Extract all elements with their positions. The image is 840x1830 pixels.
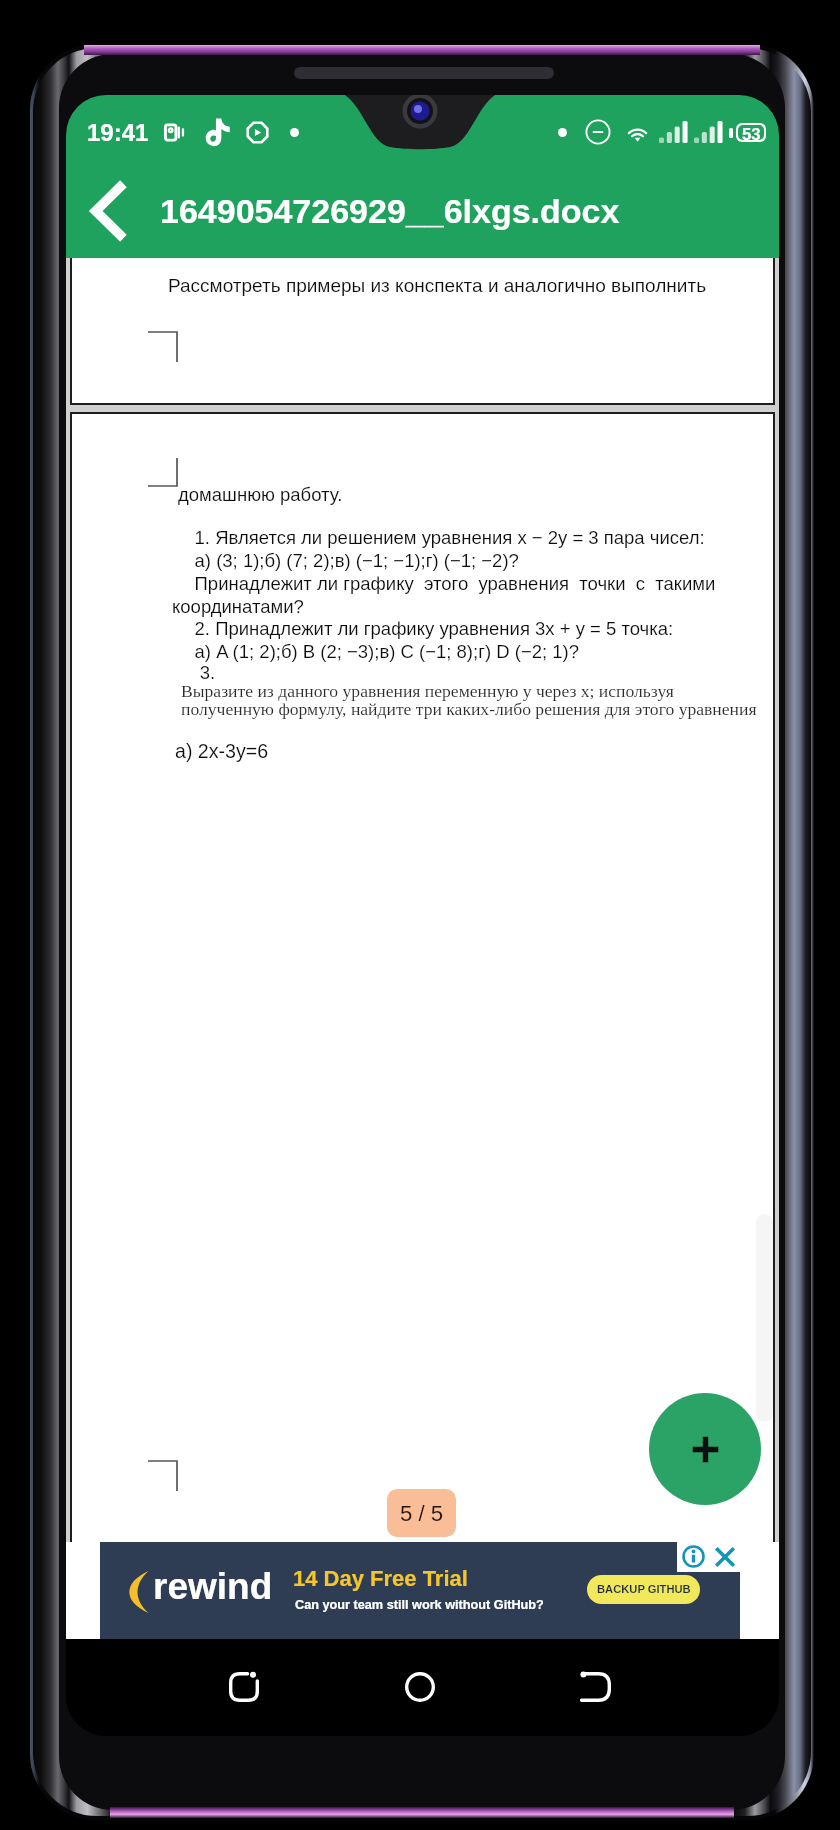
- button[interactable]: Close ad: [715, 1547, 735, 1567]
- staticText: 2. Принадлежит ли графику уравнения 3x +…: [174, 618, 674, 639]
- button[interactable]: rewind: [100, 1542, 740, 1639]
- staticText: 53: [742, 125, 761, 140]
- staticText: Выразите из данного уравнения переменную…: [181, 681, 674, 700]
- staticText: BACKUP GITHUB: [597, 1583, 691, 1596]
- staticText: rewind: [153, 1566, 273, 1607]
- button[interactable]: Home: [383, 1639, 457, 1736]
- button[interactable]: 5 / 5: [387, 1489, 456, 1537]
- button[interactable]: Back: [559, 1639, 633, 1736]
- staticText: полученную формулу, найдите три каких-ли…: [181, 699, 757, 718]
- staticText: Принадлежит ли графику этого уравнения т…: [174, 573, 716, 594]
- staticText: 19:41: [87, 119, 149, 146]
- staticText: домашнюю работу.: [178, 484, 343, 505]
- staticText: 5 / 5: [400, 1501, 444, 1526]
- staticText: 14 Day Free Trial: [293, 1566, 468, 1591]
- button[interactable]: Recent apps: [207, 1639, 281, 1736]
- staticText: Can your team still work without GitHub?: [295, 1598, 544, 1612]
- staticText: координатами?: [172, 596, 304, 617]
- button[interactable]: Back: [66, 163, 148, 258]
- button[interactable]: BACKUP GITHUB: [587, 1575, 700, 1604]
- button[interactable]: Add: [649, 1393, 761, 1505]
- staticText: а) (3; 1);б) (7; 2);в) (−1; −1);г) (−1; …: [174, 550, 519, 571]
- button[interactable]: Ad info: [682, 1545, 705, 1568]
- staticText: 1649054726929__6lxgs.docx: [160, 192, 620, 230]
- staticText: а) A (1; 2);б) B (2; −3);в) C (−1; 8);г)…: [174, 641, 579, 662]
- staticText: 1. Является ли решением уравнения x − 2y…: [174, 527, 705, 548]
- staticText: 3.: [174, 662, 216, 683]
- staticText: Рассмотреть примеры из конспекта и анало…: [168, 275, 707, 296]
- staticText: а) 2х-3у=6: [175, 740, 269, 762]
